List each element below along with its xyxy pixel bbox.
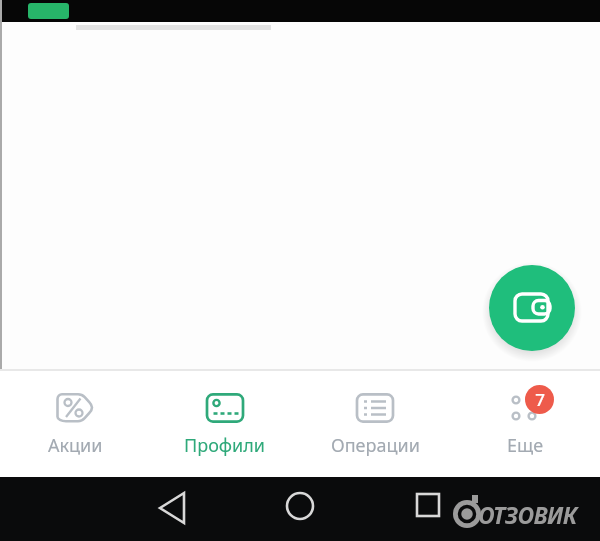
staticText: Профили xyxy=(184,433,266,458)
button[interactable]: Операции xyxy=(300,369,450,477)
staticText: Операции xyxy=(331,433,420,458)
staticText: 7 xyxy=(535,388,545,411)
button[interactable] xyxy=(400,477,600,541)
button[interactable] xyxy=(489,265,575,351)
button[interactable]: 7 xyxy=(450,369,600,477)
button[interactable]: Профили xyxy=(150,369,300,477)
staticText: Акции xyxy=(48,433,103,458)
button[interactable] xyxy=(200,477,400,541)
staticText: Еще xyxy=(507,433,544,458)
staticText: ОТЗОВИК xyxy=(478,499,577,530)
button[interactable]: Акции xyxy=(0,369,150,477)
button[interactable] xyxy=(0,477,200,541)
